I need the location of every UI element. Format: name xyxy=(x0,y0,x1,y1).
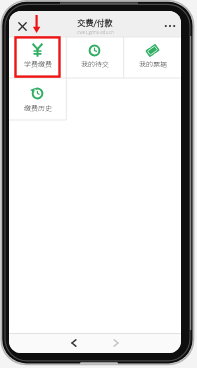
button[interactable]: 我的票据 xyxy=(124,37,181,78)
staticText: 我的票据 xyxy=(139,59,167,69)
button[interactable]: 我的待交 xyxy=(66,37,123,78)
staticText: 学费缴费 xyxy=(24,59,52,69)
staticText: 交费/付款 xyxy=(77,17,113,29)
staticText: cwe1.gzmu.edu.cn xyxy=(77,29,114,36)
staticText: 交费/付款 xyxy=(77,17,113,29)
button[interactable] xyxy=(63,334,83,352)
button[interactable] xyxy=(14,18,30,34)
staticText: 缴费历史 xyxy=(24,103,52,113)
staticText: 我的票据 xyxy=(139,59,167,69)
button[interactable]: 学费缴费 xyxy=(9,37,66,78)
button[interactable]: 缴费历史 xyxy=(9,78,66,119)
staticText: 我的待交 xyxy=(81,59,109,69)
button[interactable] xyxy=(107,334,127,352)
staticText: 学费缴费 xyxy=(24,59,52,69)
button[interactable] xyxy=(161,19,179,33)
staticText: 缴费历史 xyxy=(24,103,52,113)
staticText: 我的待交 xyxy=(81,59,109,69)
